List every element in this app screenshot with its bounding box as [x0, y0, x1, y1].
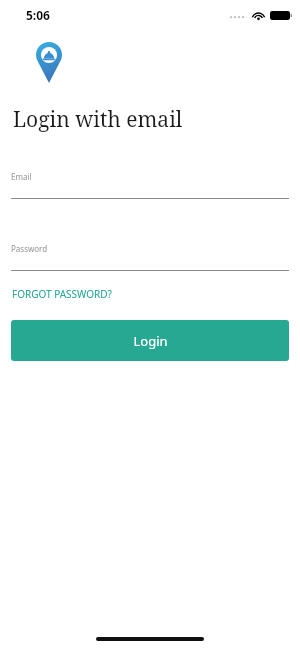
staticText: Login: [133, 332, 168, 350]
staticText: 5:06: [26, 7, 50, 23]
other: Home indicator: [96, 637, 204, 641]
staticText: Login with email: [13, 105, 183, 134]
button[interactable]: FORGOT PASSWORD?: [0, 285, 124, 303]
staticText: Password: [11, 243, 48, 254]
staticText: FORGOT PASSWORD?: [12, 287, 112, 301]
button[interactable]: Login: [11, 320, 289, 361]
button[interactable]: Password: [0, 243, 300, 271]
button[interactable]: Email: [0, 171, 300, 199]
staticText: Email: [11, 171, 32, 182]
